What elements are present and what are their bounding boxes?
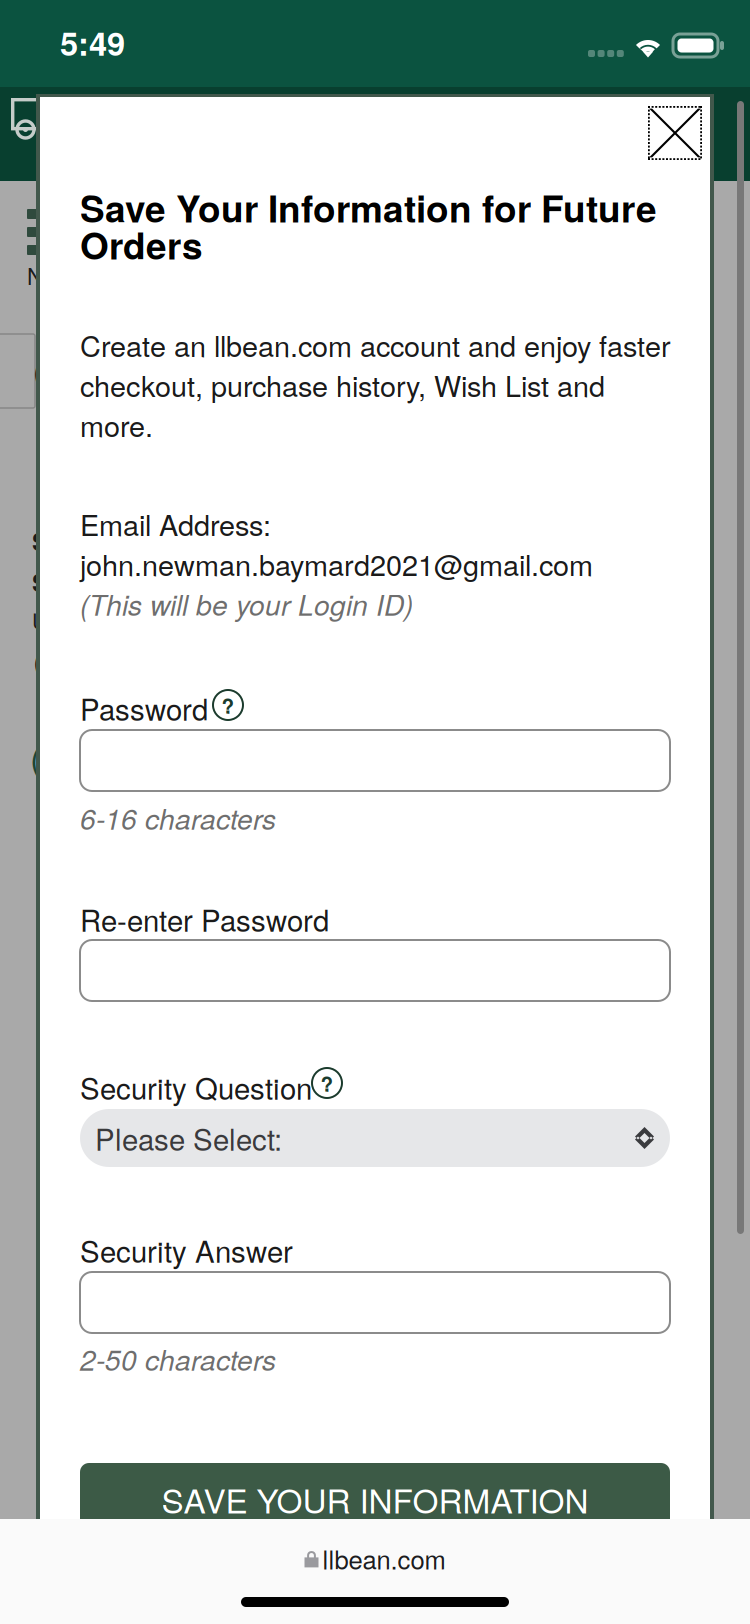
staticText: ( <box>30 732 42 782</box>
staticText: Orders <box>80 218 203 271</box>
button[interactable]: SAVE YOUR INFORMATION <box>80 1463 670 1535</box>
button[interactable]: llbean.com <box>260 1528 489 1589</box>
staticText: ? <box>221 690 234 720</box>
staticText: ? <box>320 1068 333 1098</box>
staticText: S <box>32 565 48 599</box>
staticText: Please Select: <box>95 1117 282 1159</box>
staticText: llbean.com <box>322 1540 445 1577</box>
staticText: (This will be your Login ID) <box>80 584 413 624</box>
staticText: Create an llbean.com account and enjoy f… <box>80 324 671 365</box>
staticText: john.newman.baymard2021@gmail.com <box>80 543 593 584</box>
staticText: Re-enter Password <box>80 898 329 940</box>
staticText: 5:49 <box>60 19 125 66</box>
staticText: Save Your Information for Future <box>80 181 657 234</box>
staticText: Email Address: <box>80 503 271 544</box>
staticText: SAVE YOUR INFORMATION <box>161 1475 588 1523</box>
staticText: U <box>32 605 47 635</box>
staticText: Password <box>80 687 208 729</box>
staticText: 6-16 characters <box>80 798 276 838</box>
staticText: ( <box>33 349 43 391</box>
staticText: S <box>32 524 48 558</box>
staticText: Security Answer <box>80 1229 293 1271</box>
staticText: checkout, purchase history, Wish List an… <box>80 364 605 405</box>
staticText: Security Question <box>80 1066 312 1108</box>
staticText: N <box>27 259 43 291</box>
staticText: more. <box>80 404 153 445</box>
staticText: 2-50 characters <box>80 1339 276 1379</box>
button[interactable]: Please Select: <box>80 1109 670 1167</box>
button[interactable]: Close <box>638 96 712 170</box>
staticText: ( <box>33 639 43 681</box>
